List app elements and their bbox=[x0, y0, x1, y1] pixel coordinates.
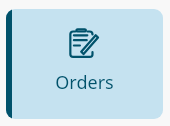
button[interactable]: Orders bbox=[6, 9, 163, 119]
other: Orders bbox=[69, 28, 101, 58]
staticText: Orders bbox=[55, 70, 114, 95]
